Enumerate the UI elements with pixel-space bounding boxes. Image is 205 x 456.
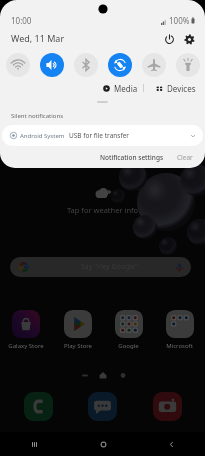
staticText: Devices	[167, 83, 196, 94]
button[interactable]: Settings	[179, 29, 199, 49]
button[interactable]: Play Store	[52, 310, 103, 350]
staticText: Media	[114, 83, 138, 94]
staticText: 100%	[169, 15, 190, 26]
button[interactable]: Devices	[152, 81, 200, 95]
button[interactable]: Phone	[24, 392, 53, 421]
button[interactable]: Bluetooth	[69, 51, 103, 79]
button[interactable]: Galaxy Store	[0, 310, 52, 350]
button[interactable]: Clear	[173, 151, 197, 164]
staticText: Clear	[177, 153, 193, 162]
button[interactable]: Messages	[88, 392, 117, 421]
button[interactable]: Android System	[2, 125, 203, 146]
staticText: Tap for weather info	[67, 205, 139, 215]
button[interactable]: Say "Hey Google"	[10, 257, 191, 277]
staticText: Silent notifications	[11, 112, 64, 120]
button[interactable]: Back	[137, 432, 205, 456]
button[interactable]: Flashlight	[171, 51, 205, 79]
staticText: 10:00	[11, 15, 32, 26]
staticText: Google	[118, 342, 139, 350]
button[interactable]: Recents	[0, 432, 69, 456]
button[interactable]: Camera	[153, 392, 182, 421]
staticText: Notification settings	[100, 153, 164, 162]
button[interactable]: Google	[103, 310, 154, 350]
staticText: Wed, 11 Mar	[11, 32, 65, 44]
button[interactable]: Airplane mode	[137, 51, 171, 79]
button[interactable]: Home	[69, 432, 137, 456]
staticText: Galaxy Store	[8, 342, 44, 350]
button[interactable]: Microsoft	[154, 310, 205, 350]
staticText: Play Store	[64, 342, 92, 350]
button[interactable]: Media	[99, 81, 142, 95]
staticText: USB for file transfer	[69, 131, 129, 140]
staticText: Android System	[20, 132, 65, 140]
button[interactable]: Sound	[35, 51, 69, 79]
button[interactable]: Auto rotate	[103, 51, 137, 79]
button[interactable]: Notification settings	[96, 151, 168, 164]
button[interactable]: Power off	[159, 29, 179, 49]
staticText: Say "Hey Google"	[81, 262, 138, 272]
staticText: Microsoft	[166, 342, 193, 350]
button[interactable]: Wi-Fi	[0, 51, 35, 79]
button[interactable]: Tap for weather info	[0, 186, 205, 215]
